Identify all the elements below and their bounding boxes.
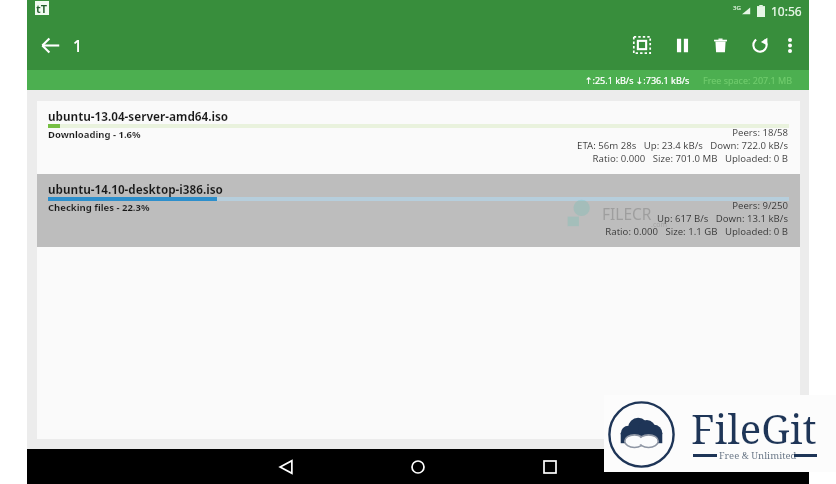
staticText: FILECR [602,203,652,224]
staticText: Free space: 207.1 MB [703,74,793,86]
button[interactable]: Back [36,31,65,60]
staticText: Up: 617 B/s Down: 13.1 kB/s [656,212,788,225]
staticText: 10:56 [771,3,802,19]
button[interactable]: Pause [668,31,696,59]
staticText: Peers: 9/250 [732,199,788,212]
staticText: 1 [73,35,83,57]
staticText: Peers: 18/58 [732,126,788,139]
staticText: 3G [733,4,741,12]
button[interactable]: Delete [706,31,734,59]
staticText: Free & Unlimited [719,449,797,462]
staticText: Checking files - 22.3% [48,201,150,214]
button[interactable]: Back [266,449,306,484]
staticText: tT [36,1,48,15]
staticText: ↑:25.1 kB/s ↓:736.1 kB/s [585,74,690,86]
staticText: Downloading - 1.6% [48,128,141,141]
button[interactable]: ubuntu-13.04-server-amd64.iso [37,101,800,174]
staticText: Ratio: 0.000 Size: 701.0 MB Uploaded: 0 … [592,152,788,165]
staticText: ETA: 56m 28s Up: 23.4 kB/s Down: 722.0 k… [577,139,788,152]
staticText: Ratio: 0.000 Size: 1.1 GB Uploaded: 0 B [605,225,788,238]
button[interactable]: Recents [530,449,570,484]
button[interactable]: More options [776,31,804,59]
button[interactable]: Refresh [746,31,774,59]
staticText: .com [651,220,668,230]
button[interactable]: ubuntu-14.10-desktop-i386.iso [37,174,800,247]
staticText: FileGit [691,401,817,455]
button[interactable]: Select all [628,31,656,59]
staticText: ubuntu-14.10-desktop-i386.iso [48,181,223,197]
button[interactable]: Home [398,449,438,484]
staticText: ubuntu-13.04-server-amd64.iso [48,108,229,124]
